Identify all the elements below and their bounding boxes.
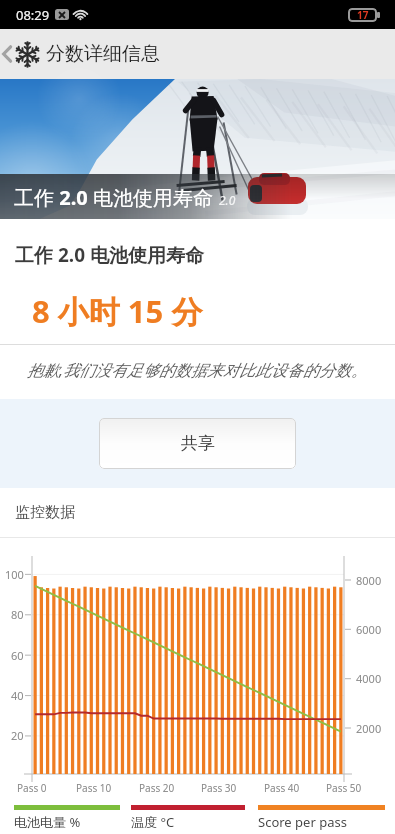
staticText: 6000 — [356, 622, 382, 637]
staticText: 温度 °C — [131, 813, 175, 831]
staticText: Pass 30 — [201, 781, 237, 795]
staticText: 4000 — [356, 671, 382, 686]
staticText: 17 — [357, 8, 369, 22]
staticText: Pass 40 — [264, 781, 300, 795]
staticText: 2.0 — [219, 192, 236, 208]
staticText: 100 — [5, 567, 24, 582]
staticText: 60 — [11, 648, 24, 663]
staticText: 20 — [11, 728, 24, 743]
staticText: 8 小时 15 分 — [32, 290, 203, 332]
staticText: 工作 2.0 电池使用寿命 — [15, 242, 204, 268]
staticText: Pass 0 — [17, 781, 47, 795]
staticText: 08:29 — [16, 6, 50, 24]
staticText: 2000 — [356, 721, 382, 736]
button[interactable]: 共享 — [99, 418, 296, 469]
staticText: Pass 20 — [139, 781, 175, 795]
staticText: 工作 2.0 电池使用寿命 — [14, 184, 213, 211]
staticText: 80 — [11, 607, 24, 622]
button[interactable]: Back — [0, 37, 14, 71]
staticText: 电池电量 % — [14, 813, 81, 831]
staticText: 8000 — [356, 573, 382, 588]
staticText: 抱歉,我们没有足够的数据来对比此设备的分数。 — [27, 359, 368, 381]
staticText: 40 — [11, 688, 24, 703]
staticText: 共享 — [181, 433, 215, 454]
staticText: Score per pass — [258, 813, 347, 831]
staticText: 分数详细信息 — [46, 42, 160, 66]
staticText: Pass 10 — [76, 781, 112, 795]
staticText: 监控数据 — [15, 503, 75, 522]
staticText: Pass 50 — [326, 781, 362, 795]
